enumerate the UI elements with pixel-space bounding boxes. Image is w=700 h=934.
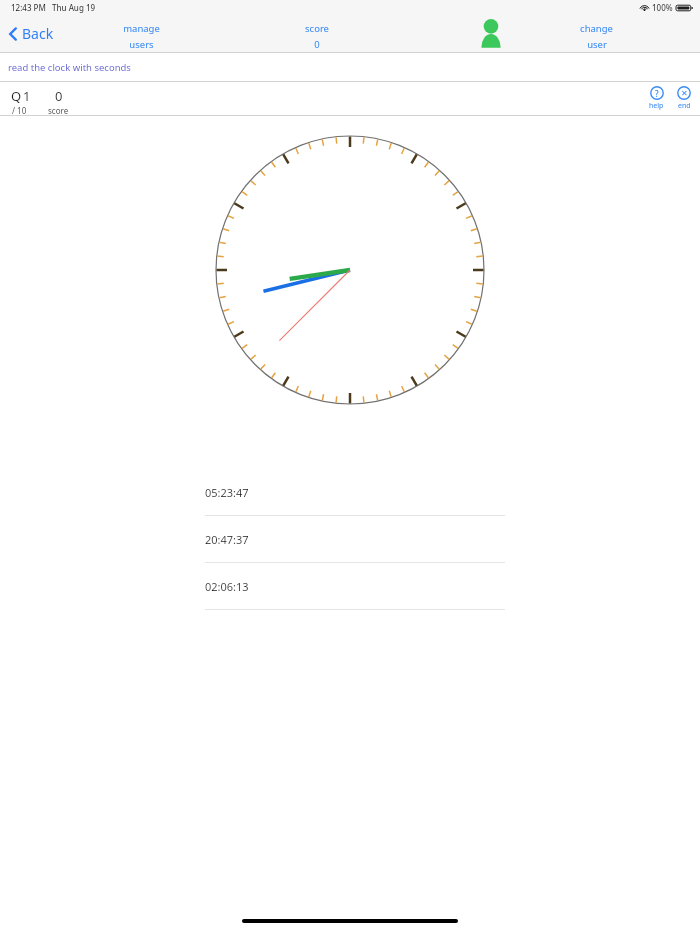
staticText: Back: [22, 24, 54, 43]
staticText: 02:06:13: [205, 579, 249, 594]
staticText: score: [305, 22, 329, 35]
button[interactable]: 05:23:47: [205, 469, 505, 516]
staticText: 05:23:47: [205, 485, 249, 500]
staticText: 1: [23, 87, 31, 105]
staticText: / 10: [12, 105, 27, 115]
staticText: users: [129, 38, 154, 50]
staticText: Q: [11, 87, 22, 105]
staticText: 12:43 PM Thu Aug 19: [11, 2, 96, 13]
staticText: change: [580, 22, 613, 35]
staticText: 20:47:37: [205, 532, 249, 547]
button[interactable]: 20:47:37: [205, 516, 505, 563]
staticText: read the clock with seconds: [8, 61, 131, 74]
staticText: ?: [655, 88, 659, 99]
staticText: ✕: [681, 89, 688, 98]
staticText: user: [587, 38, 607, 50]
staticText: 100%: [652, 2, 673, 13]
button[interactable]: change: [574, 20, 619, 52]
button[interactable]: end: [674, 85, 694, 112]
staticText: score: [48, 105, 69, 115]
staticText: manage: [123, 22, 160, 35]
staticText: 0: [314, 38, 320, 50]
staticText: help: [649, 101, 664, 111]
button[interactable]: User profile: [474, 18, 508, 49]
button[interactable]: help: [646, 85, 667, 112]
staticText: end: [678, 101, 691, 111]
staticText: 0: [55, 87, 63, 105]
button[interactable]: score: [299, 20, 335, 52]
button[interactable]: 02:06:13: [205, 563, 505, 610]
button[interactable]: manage: [117, 20, 166, 52]
button[interactable]: Back: [5, 19, 58, 48]
